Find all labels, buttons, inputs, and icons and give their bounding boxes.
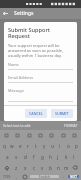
staticText: Message (8, 88, 24, 93)
button[interactable]: Space (30, 175, 59, 178)
button[interactable]: w (8, 140, 16, 151)
staticText: z (15, 165, 18, 171)
staticText: Your support request will be answered as… (8, 43, 73, 58)
staticText: l (73, 154, 75, 160)
button[interactable]: Keyboard tool 5 (60, 132, 67, 139)
staticText: . (63, 174, 65, 180)
staticText: Submit Support Request (8, 26, 73, 40)
button[interactable]: e (16, 140, 24, 151)
staticText: t (35, 143, 37, 149)
button[interactable]: d (21, 151, 30, 162)
staticText: CANCEL (29, 111, 43, 116)
button[interactable]: Keyboard tool 3 (37, 132, 44, 139)
button[interactable]: u (48, 140, 56, 151)
staticText: c (33, 165, 36, 171)
button[interactable]: z (12, 162, 21, 173)
staticText: SUBMIT (55, 111, 69, 116)
staticText: k (65, 154, 68, 160)
button[interactable]: y (40, 140, 48, 151)
button[interactable]: p (72, 140, 80, 151)
staticText: , (16, 174, 18, 180)
staticText: i (59, 143, 61, 149)
button[interactable]: g (38, 151, 46, 162)
staticText: e (19, 143, 22, 149)
button[interactable]: Back (0, 8, 11, 19)
button[interactable]: SUBMIT (51, 109, 73, 118)
button[interactable]: m (62, 162, 70, 173)
button[interactable]: i (56, 140, 64, 151)
button[interactable]: k (62, 151, 70, 162)
button[interactable]: Keyboard tool 1 (14, 132, 21, 139)
button[interactable]: x (21, 162, 30, 173)
staticText: q (3, 143, 6, 149)
staticText: English (39, 175, 50, 178)
button[interactable]: Keyboard tool 4 (48, 132, 55, 139)
staticText: r (27, 143, 29, 149)
staticText: s (15, 154, 18, 160)
staticText: m (64, 165, 69, 171)
staticText: v (41, 165, 44, 171)
button[interactable]: o (64, 140, 72, 151)
button[interactable]: j (54, 151, 62, 162)
staticText: p (75, 143, 78, 149)
button[interactable]: Keyboard tool 0 (3, 132, 10, 139)
button[interactable]: Next (68, 175, 79, 178)
staticText: o (67, 143, 70, 149)
staticText: j (57, 154, 59, 160)
staticText: w (10, 143, 14, 149)
button[interactable]: Emoji (20, 173, 29, 180)
button[interactable]: f (30, 151, 38, 162)
staticText: a (6, 154, 9, 160)
button[interactable]: q (1, 140, 8, 151)
button[interactable]: h (46, 151, 54, 162)
staticText: Name (8, 62, 19, 67)
staticText: FORMAT (64, 123, 78, 128)
staticText: n (57, 165, 60, 171)
button[interactable]: Email Address (8, 75, 73, 83)
staticText: b (49, 165, 52, 171)
button[interactable]: l (70, 151, 78, 162)
button[interactable]: c (30, 162, 38, 173)
button[interactable]: ?123 (1, 173, 13, 180)
button[interactable]: Comma (13, 173, 20, 180)
staticText: Select text to edit (3, 123, 31, 128)
button[interactable]: Message (8, 88, 73, 102)
staticText: h (49, 154, 52, 160)
button[interactable]: b (46, 162, 54, 173)
button[interactable]: Keyboard tool 2 (26, 132, 33, 139)
staticText: NEXT (70, 175, 78, 178)
button[interactable]: t (32, 140, 40, 151)
button[interactable]: r (24, 140, 32, 151)
button[interactable]: n (54, 162, 62, 173)
button[interactable]: v (38, 162, 46, 173)
button[interactable]: Name (8, 62, 73, 70)
button[interactable]: a (3, 151, 12, 162)
button[interactable]: Shift (1, 162, 12, 173)
staticText: x (24, 165, 27, 171)
staticText: Settings (14, 10, 34, 17)
staticText: y (43, 143, 46, 149)
staticText: Email Address (8, 75, 34, 80)
staticText: g (41, 154, 44, 160)
staticText: ?123 (3, 174, 11, 179)
staticText: d (24, 154, 27, 160)
button[interactable]: CANCEL (25, 109, 47, 118)
staticText: f (33, 154, 35, 160)
button[interactable]: s (12, 151, 21, 162)
button[interactable]: Backspace (70, 162, 80, 173)
staticText: u (51, 143, 54, 149)
button[interactable]: Keyboard tool 6 (71, 132, 78, 139)
